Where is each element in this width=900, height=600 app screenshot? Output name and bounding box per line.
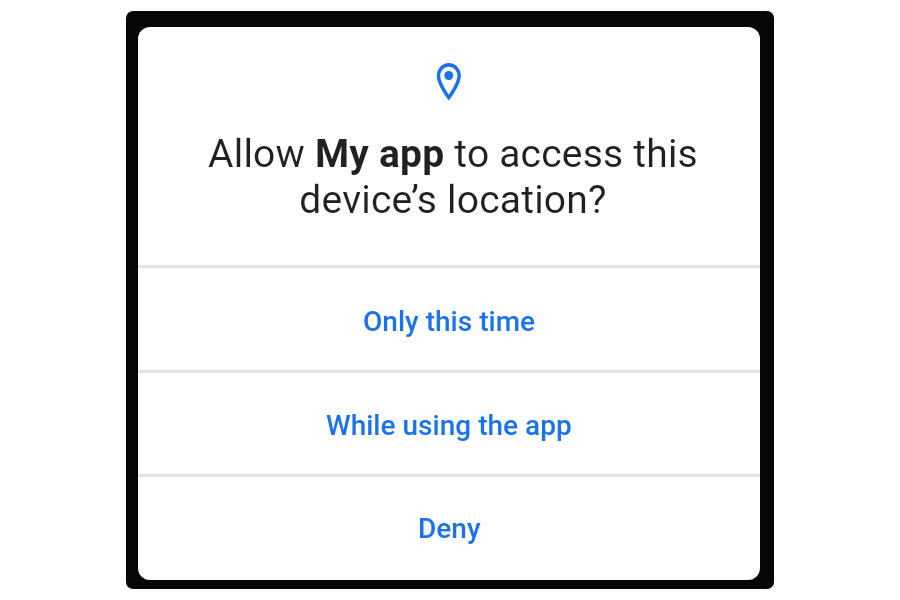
staticText: Allow My app to access this device’s loc… [208, 131, 698, 223]
staticText: Deny [418, 512, 481, 545]
button[interactable]: Deny [138, 477, 760, 580]
staticText: Only this time [363, 305, 536, 338]
button[interactable]: Only this time [138, 270, 760, 372]
button[interactable]: While using the app [138, 375, 760, 476]
staticText: While using the app [326, 409, 572, 442]
